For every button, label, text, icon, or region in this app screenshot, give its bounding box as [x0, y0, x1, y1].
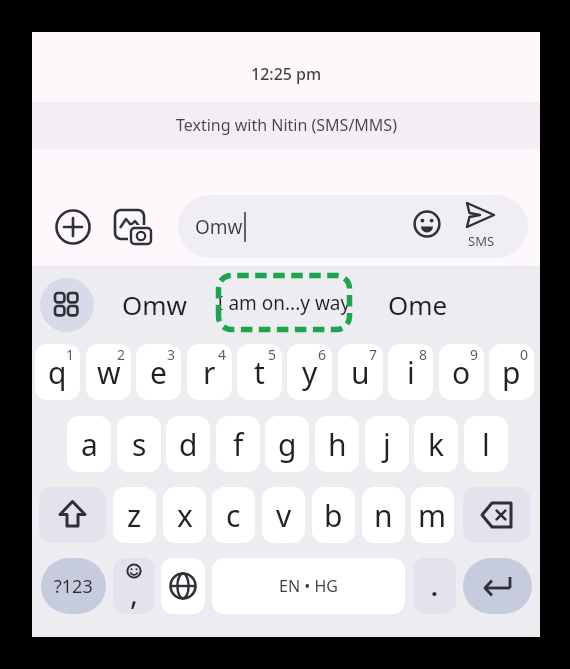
button[interactable] [413, 210, 441, 238]
staticText: d [179, 424, 198, 465]
button[interactable]: x [163, 487, 206, 543]
button[interactable]: z [113, 487, 156, 543]
staticText: h [328, 424, 347, 465]
staticText: EN • HG [279, 575, 338, 597]
staticText: u [351, 352, 370, 393]
button[interactable]: g [265, 416, 309, 472]
button[interactable]: , [113, 558, 155, 614]
staticText: Omw [122, 287, 188, 322]
staticText: Omw [195, 214, 243, 240]
button[interactable]: m [411, 487, 454, 543]
button[interactable]: ?123 [41, 558, 106, 614]
button[interactable]: Omw [117, 282, 192, 326]
staticText: w [97, 352, 121, 393]
button[interactable]: p [489, 344, 534, 400]
button[interactable]: . [413, 558, 456, 614]
staticText: x [177, 495, 193, 536]
staticText: f [233, 424, 244, 465]
staticText: i [407, 352, 415, 393]
button[interactable]: w [86, 344, 131, 400]
staticText: 2 [117, 345, 126, 364]
staticText: r [203, 352, 216, 393]
staticText: , [130, 573, 139, 614]
staticText: j [383, 424, 391, 465]
staticText: s [132, 424, 147, 465]
button[interactable] [40, 278, 94, 332]
staticText: ?123 [54, 574, 93, 599]
button[interactable]: o [439, 344, 484, 400]
staticText: a [81, 424, 98, 465]
staticText: e [150, 352, 167, 393]
staticText: I am on...y way [217, 290, 351, 316]
staticText: y [302, 352, 318, 393]
button[interactable]: b [312, 487, 355, 543]
button[interactable]: k [414, 416, 458, 472]
button[interactable]: s [117, 416, 161, 472]
button[interactable]: v [262, 487, 305, 543]
staticText: 3 [167, 345, 176, 364]
staticText: n [374, 495, 393, 536]
staticText: z [127, 495, 142, 536]
staticText: m [418, 495, 447, 536]
button[interactable]: r [187, 344, 232, 400]
staticText: l [482, 424, 490, 465]
staticText: 6 [318, 345, 327, 364]
staticText: 4 [218, 345, 227, 364]
button[interactable]: q [35, 344, 80, 400]
button[interactable] [39, 487, 106, 543]
staticText: 5 [268, 345, 277, 364]
staticText: 0 [520, 345, 529, 364]
button[interactable]: u [338, 344, 383, 400]
button[interactable]: I am on...y way [216, 273, 352, 332]
button[interactable]: h [315, 416, 359, 472]
button[interactable]: i [388, 344, 433, 400]
button[interactable]: e [136, 344, 181, 400]
button[interactable]: a [67, 416, 111, 472]
staticText: 12:25 pm [251, 63, 322, 85]
button[interactable] [464, 201, 498, 247]
button[interactable]: d [166, 416, 210, 472]
staticText: . [431, 570, 438, 603]
button[interactable] [112, 206, 154, 248]
button[interactable]: n [362, 487, 405, 543]
button[interactable]: Ome [382, 282, 454, 326]
button[interactable] [55, 209, 91, 245]
staticText: Texting with Nitin (SMS/MMS) [176, 114, 397, 136]
staticText: 7 [369, 345, 378, 364]
staticText: SMS [468, 232, 495, 250]
staticText: 8 [419, 345, 428, 364]
staticText: Ome [388, 287, 448, 322]
button[interactable]: c [212, 487, 255, 543]
button[interactable]: EN • HG [212, 558, 405, 614]
staticText: v [276, 495, 292, 536]
button[interactable]: f [216, 416, 260, 472]
button[interactable] [161, 558, 205, 614]
staticText: q [48, 352, 67, 393]
button[interactable] [178, 195, 528, 258]
staticText: 1 [66, 345, 75, 364]
staticText: b [324, 495, 343, 536]
button[interactable] [463, 558, 532, 614]
staticText: g [278, 424, 297, 465]
staticText: o [452, 352, 471, 393]
button[interactable] [463, 487, 531, 543]
staticText: p [502, 352, 521, 393]
button[interactable]: y [287, 344, 332, 400]
staticText: t [254, 352, 265, 393]
staticText: c [226, 495, 241, 536]
staticText: 9 [470, 345, 479, 364]
button[interactable]: t [237, 344, 282, 400]
button[interactable]: l [464, 416, 508, 472]
staticText: k [428, 424, 445, 465]
button[interactable]: j [365, 416, 409, 472]
